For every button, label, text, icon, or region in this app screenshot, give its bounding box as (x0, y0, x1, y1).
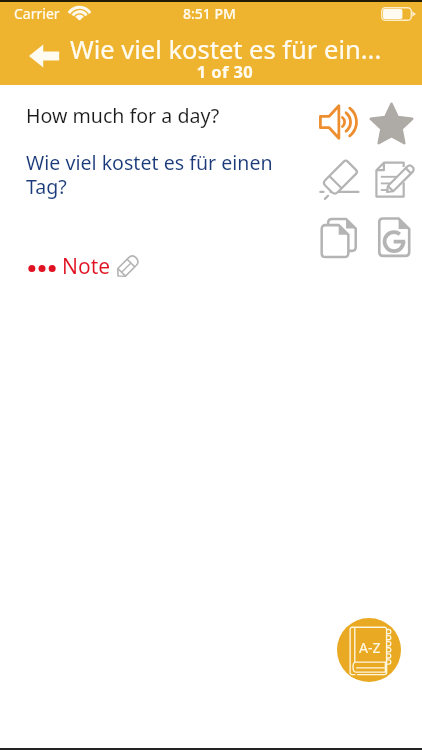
button[interactable]: Note (28, 250, 144, 282)
staticText: Wie viel kostet es für ein... (70, 32, 412, 67)
staticText: Carrier (14, 4, 60, 23)
staticText: 1 of 30 (70, 60, 380, 82)
staticText: 8:51 PM (183, 4, 236, 23)
button[interactable]: Translate (374, 215, 418, 259)
button[interactable]: Erase (317, 157, 362, 202)
staticText: Note (62, 252, 111, 281)
button[interactable]: Dictionary (337, 618, 401, 682)
staticText: Wie viel kostet es für einen Tag? (26, 149, 294, 200)
button[interactable]: Play audio (316, 100, 360, 144)
staticText: A-Z (359, 638, 381, 657)
button[interactable]: Edit note (372, 157, 416, 201)
button[interactable]: Copy (318, 215, 364, 261)
button[interactable]: Back (25, 40, 63, 72)
button[interactable]: Favorite (369, 101, 414, 146)
staticText: How much for a day? (26, 102, 220, 129)
